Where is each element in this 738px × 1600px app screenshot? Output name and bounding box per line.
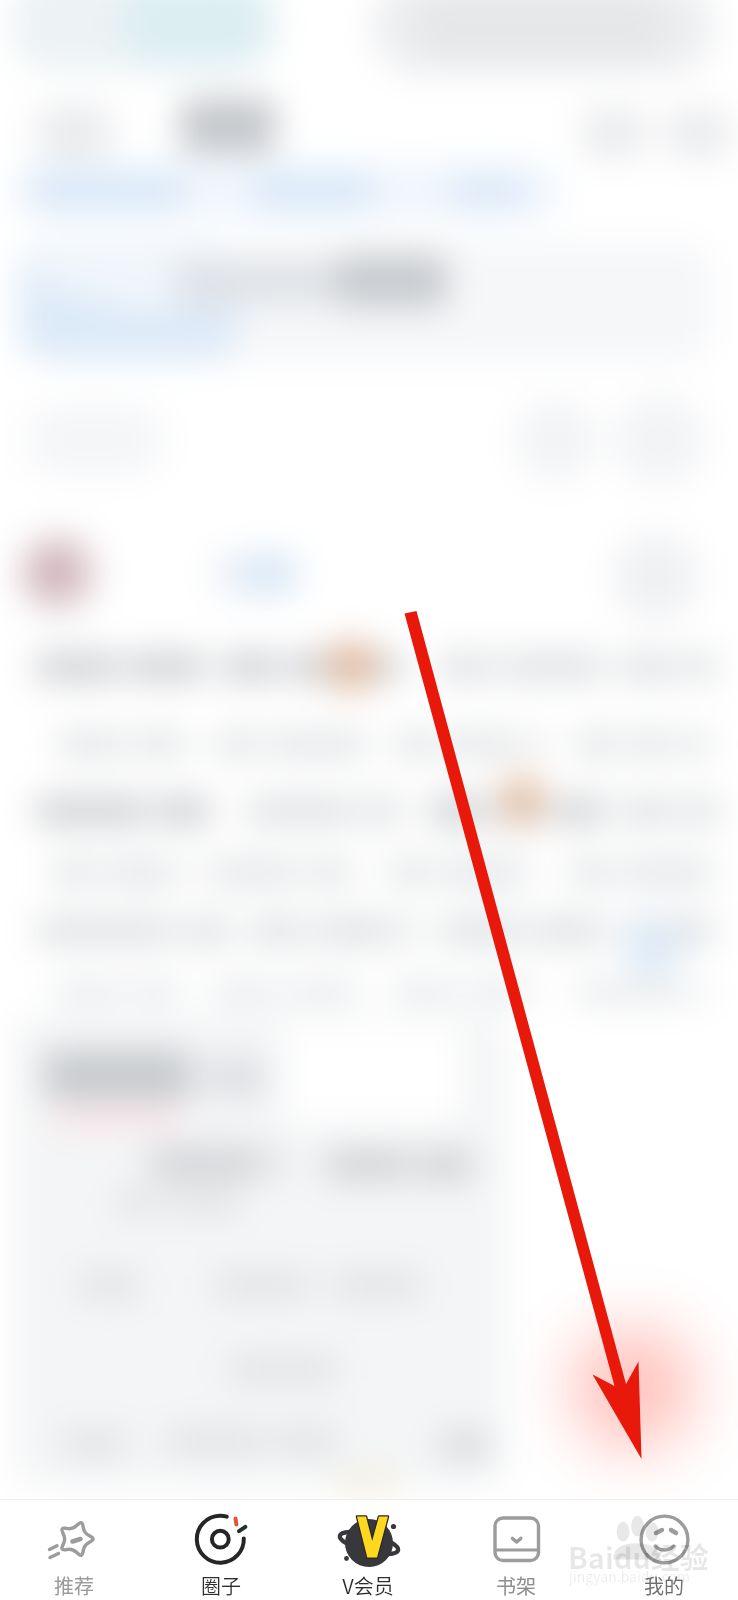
button[interactable]: 我的	[590, 1500, 738, 1600]
staticText: 推荐	[54, 1571, 94, 1600]
button[interactable]: 推荐	[0, 1500, 147, 1600]
staticText: 圈子	[201, 1571, 241, 1600]
staticText: 我的	[644, 1571, 684, 1600]
button[interactable]: 圈子	[147, 1500, 294, 1600]
button[interactable]: V会员	[294, 1500, 442, 1600]
staticText: 书架	[496, 1571, 536, 1600]
staticText: jingyan.baidu.com	[569, 1566, 690, 1586]
button[interactable]: 书架	[442, 1500, 590, 1600]
staticText: Baidu经验	[568, 1535, 709, 1577]
staticText: V会员	[342, 1571, 394, 1600]
